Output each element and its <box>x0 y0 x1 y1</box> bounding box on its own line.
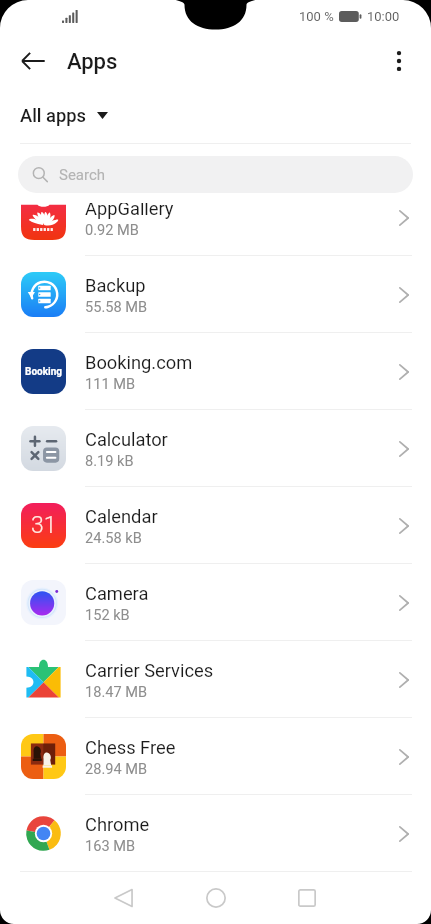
staticText: Carrier Services <box>85 660 214 681</box>
staticText: 10:00 <box>367 9 400 24</box>
button[interactable]: Home <box>186 872 246 924</box>
staticText: AppGallery <box>85 203 174 219</box>
button[interactable]: Recent apps <box>277 872 337 924</box>
staticText: Booking <box>25 366 62 378</box>
button[interactable]: All apps <box>20 95 108 135</box>
button[interactable]: Back <box>93 872 153 924</box>
button[interactable]: 31 <box>0 487 431 564</box>
staticText: Chrome <box>85 814 150 835</box>
button[interactable]: Back <box>10 38 56 84</box>
staticText: All apps <box>20 105 87 126</box>
button[interactable]: AppGallery <box>0 203 431 256</box>
staticText: 55.58 MB <box>85 298 148 315</box>
staticText: 28.94 MB <box>85 760 148 777</box>
button[interactable]: Backup <box>0 256 431 333</box>
button[interactable]: Booking <box>0 333 431 410</box>
staticText: 0.92 MB <box>85 221 139 238</box>
staticText: 24.58 kB <box>85 529 142 546</box>
staticText: Backup <box>85 275 146 296</box>
button[interactable]: Carrier Services <box>0 641 431 718</box>
staticText: 152 kB <box>85 606 130 623</box>
button[interactable]: Chrome <box>0 795 431 872</box>
staticText: 18.47 MB <box>85 683 148 700</box>
staticText: 8.19 kB <box>85 452 134 469</box>
staticText: Apps <box>67 49 118 75</box>
button[interactable]: Chess Free <box>0 718 431 795</box>
staticText: Booking.com <box>85 352 193 373</box>
staticText: Calendar <box>85 506 158 527</box>
staticText: 163 MB <box>85 837 136 854</box>
staticText: Chess Free <box>85 737 176 758</box>
staticText: Calculator <box>85 429 168 450</box>
button[interactable]: Camera <box>0 564 431 641</box>
button[interactable]: More options <box>376 38 422 84</box>
staticText: 111 MB <box>85 375 136 392</box>
staticText: Search <box>59 166 106 184</box>
button[interactable]: Calculator <box>0 410 431 487</box>
staticText: 100 % <box>299 9 334 24</box>
staticText: 31 <box>31 512 57 539</box>
staticText: Camera <box>85 583 149 604</box>
button[interactable]: Search <box>18 156 413 193</box>
